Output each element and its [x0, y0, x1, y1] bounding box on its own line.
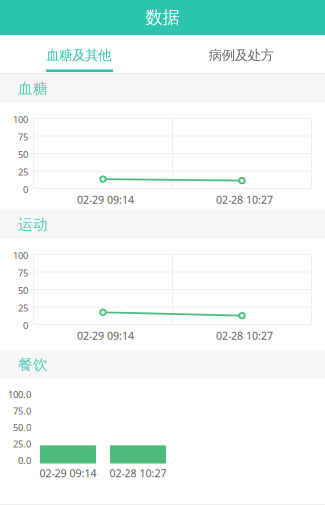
staticText: 100.0	[8, 388, 31, 401]
staticText: 血糖	[18, 79, 48, 97]
staticText: 0	[23, 319, 28, 332]
staticText: 病例及处方	[209, 47, 274, 63]
staticText: 25	[18, 166, 28, 178]
button[interactable]: 血糖及其他	[0, 35, 162, 63]
staticText: 75.0	[13, 405, 31, 417]
staticText: 餐饮	[18, 355, 48, 373]
staticText: 02-29 09:14	[39, 466, 96, 480]
staticText: 02-28 10:27	[216, 192, 273, 207]
staticText: 75	[18, 131, 28, 143]
staticText: 100	[13, 249, 28, 262]
staticText: 02-28 10:27	[216, 328, 273, 343]
staticText: 02-28 10:27	[109, 466, 166, 480]
staticText: 50.0	[13, 421, 31, 434]
staticText: 50	[18, 148, 28, 161]
staticText: 0	[23, 183, 28, 196]
staticText: 25	[18, 302, 28, 314]
staticText: 0.0	[18, 454, 31, 467]
staticText: 血糖及其他	[46, 47, 111, 63]
staticText: 75	[18, 267, 28, 279]
staticText: 运动	[18, 215, 48, 233]
staticText: 数据	[145, 7, 179, 28]
staticText: 02-29 09:14	[77, 192, 134, 207]
staticText: 25.0	[13, 438, 31, 450]
staticText: 50	[18, 284, 28, 297]
button[interactable]: 病例及处方	[162, 35, 325, 63]
staticText: 02-29 09:14	[77, 328, 134, 343]
staticText: 100	[13, 113, 28, 126]
